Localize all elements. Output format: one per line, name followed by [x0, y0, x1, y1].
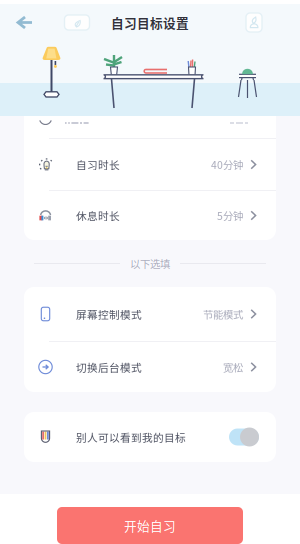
button[interactable]: 开始自习 — [57, 507, 243, 544]
button[interactable]: 屏幕控制模式 — [24, 287, 276, 341]
staticText: 自习时长 — [76, 157, 120, 172]
staticText: 休息时长 — [76, 208, 120, 223]
button[interactable]: Profile — [239, 8, 269, 36]
staticText: 切换后台模式 — [76, 359, 142, 375]
button[interactable]: 别人可以看到我的目标 — [24, 412, 276, 462]
button[interactable]: Back — [10, 7, 40, 37]
staticText: 40分钟 — [211, 157, 243, 172]
staticText: 以下选填 — [130, 256, 170, 271]
button[interactable]: 自习时长 — [24, 139, 276, 190]
button[interactable]: Location — [62, 8, 92, 36]
staticText: 自习目标设置 — [111, 13, 189, 32]
staticText: 5分钟 — [217, 208, 243, 223]
staticText: 宽松 — [223, 359, 243, 375]
staticText: 开始自习 — [124, 516, 176, 535]
staticText: 别人可以看到我的目标 — [76, 429, 186, 445]
button[interactable]: 切换后台模式 — [24, 342, 276, 392]
staticText: 屏幕控制模式 — [76, 306, 142, 322]
staticText: 节能模式 — [203, 306, 243, 322]
button[interactable]: 休息时长 — [24, 191, 276, 240]
